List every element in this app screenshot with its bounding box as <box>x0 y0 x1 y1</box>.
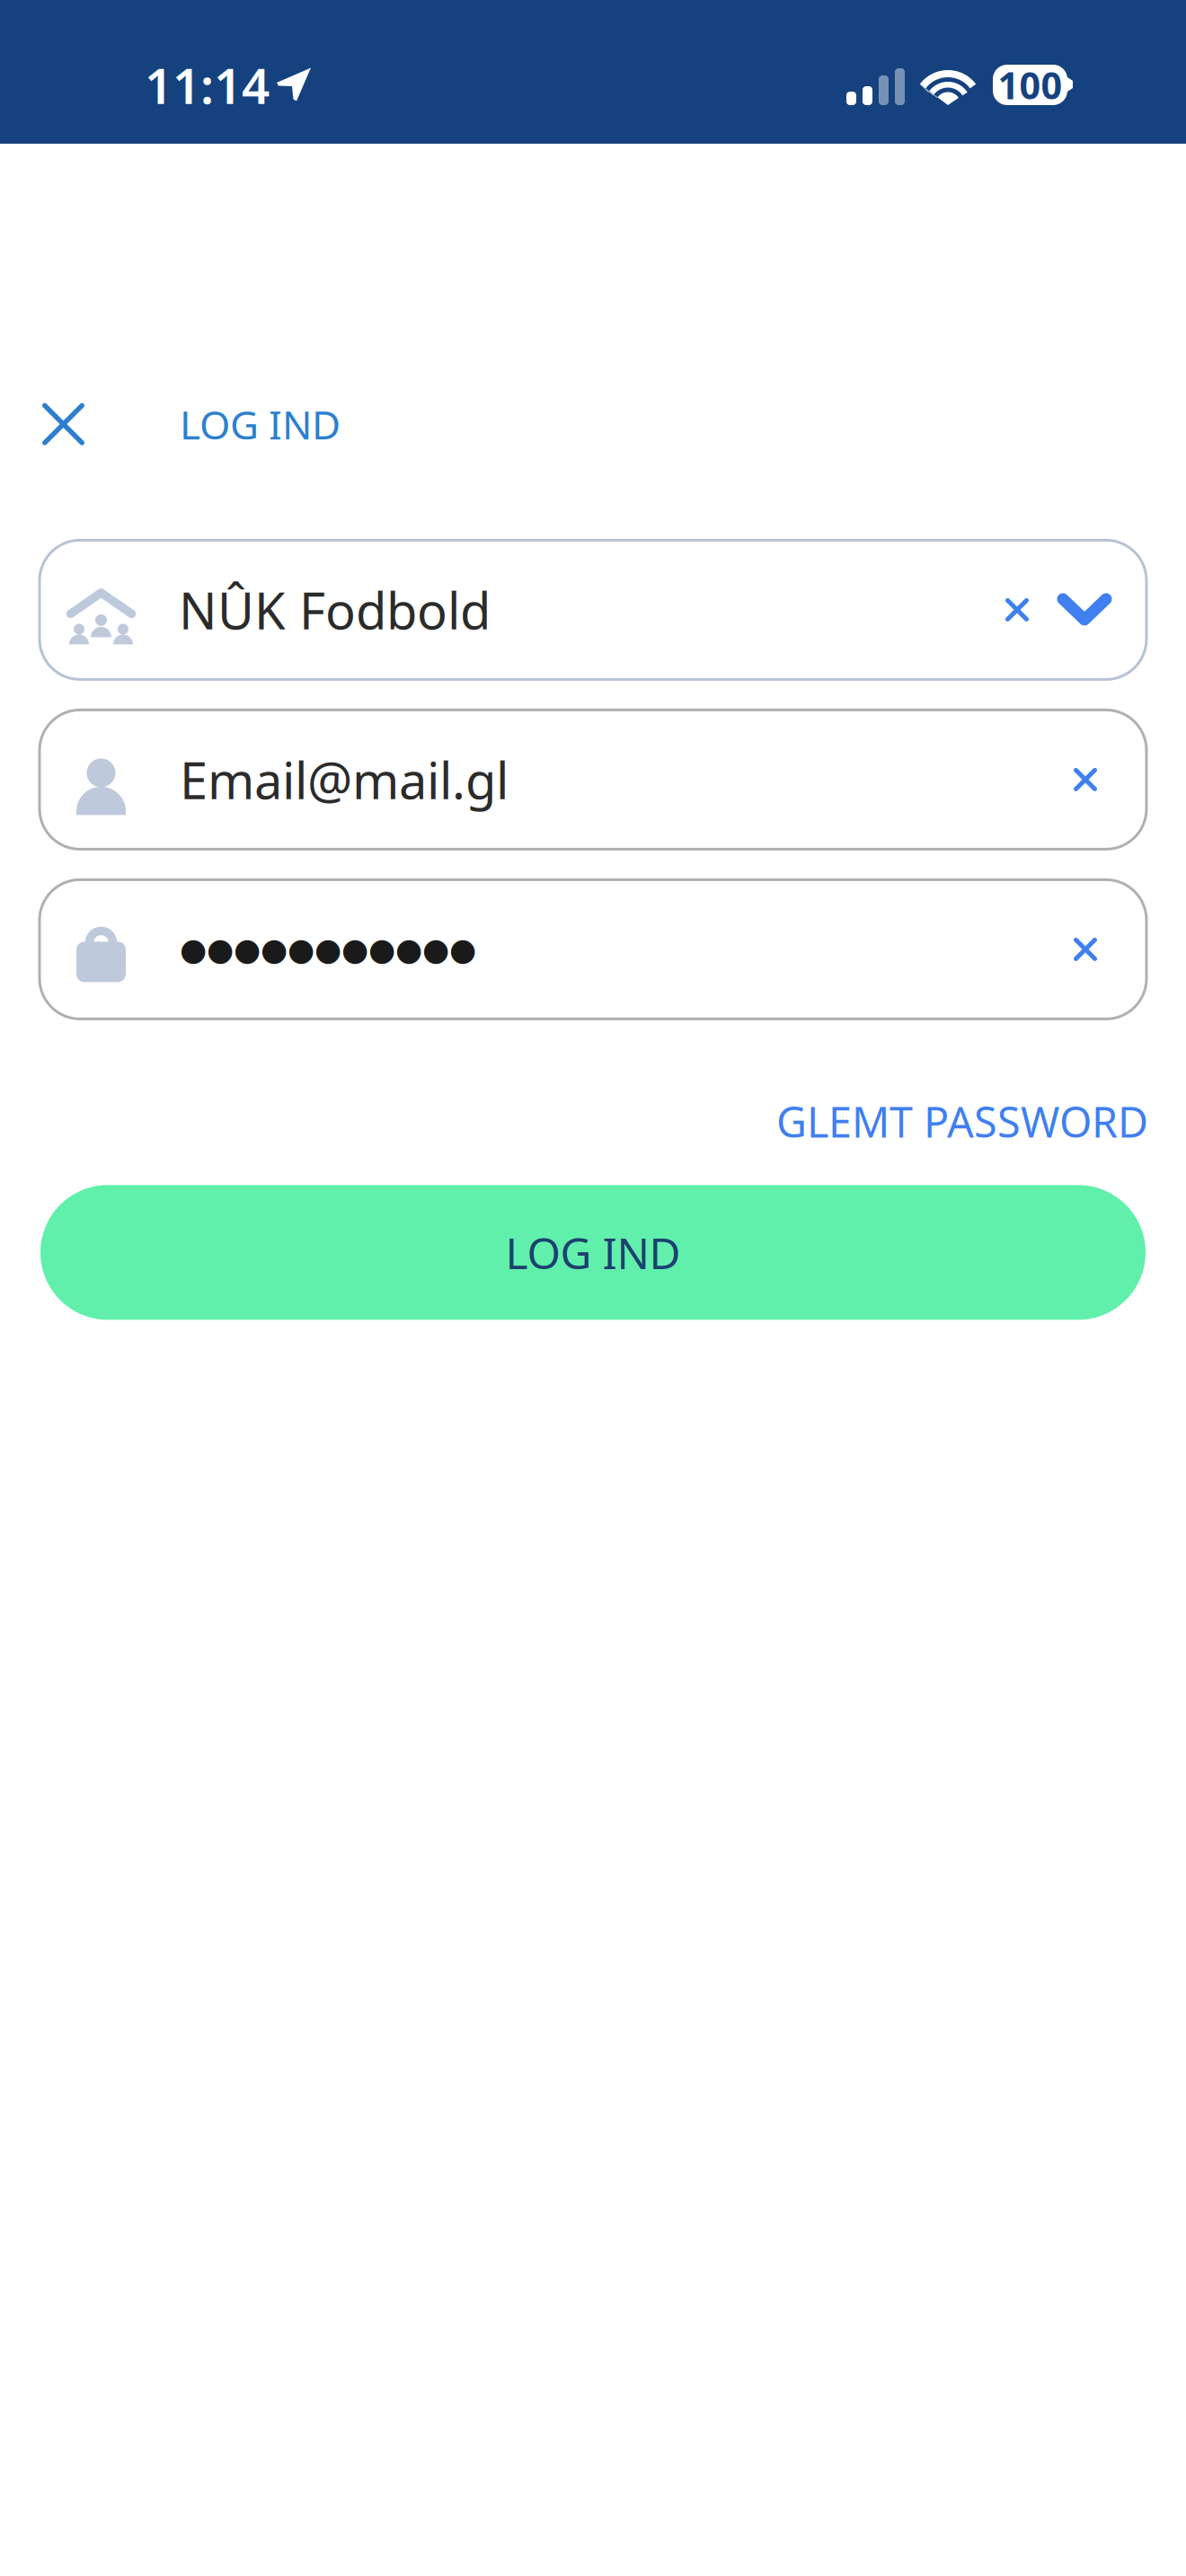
button[interactable]: LOG IND <box>132 376 367 472</box>
staticText: 11:14 <box>145 52 270 117</box>
staticText: NÛK Fodbold <box>179 576 491 643</box>
staticText: GLEMT PASSWORD <box>776 1093 1148 1149</box>
staticText: Email@mail.gl <box>180 746 509 813</box>
staticText: ●●●●●●●●●●● <box>180 932 476 967</box>
staticText: LOG IND <box>505 1224 681 1281</box>
button[interactable]: Clear password <box>1074 911 1146 988</box>
button[interactable]: GLEMT PASSWORD <box>776 1081 1148 1162</box>
button[interactable]: Select club <box>40 540 1146 679</box>
button[interactable]: Clear email <box>1074 741 1146 818</box>
staticText: LOG IND <box>180 398 341 450</box>
button[interactable]: LOG IND <box>0 1185 1186 1320</box>
staticText: 100 <box>998 60 1062 110</box>
button[interactable]: Close <box>0 381 132 467</box>
